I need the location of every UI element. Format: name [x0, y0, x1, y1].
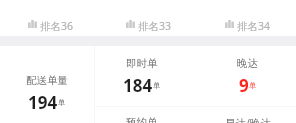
staticText: 单 [249, 81, 257, 90]
button[interactable]: 晚达 [199, 46, 296, 106]
button[interactable]: 排名34 [197, 0, 296, 36]
staticText: 单 [58, 98, 66, 107]
staticText: 排名34 [237, 19, 271, 33]
staticText: 早达/晚达 [225, 116, 271, 123]
staticText: 194 [28, 91, 58, 114]
staticText: 排名36 [40, 19, 74, 33]
button[interactable]: 预约单 [95, 107, 188, 123]
staticText: 184 [123, 74, 153, 97]
button[interactable]: 即时单 [95, 46, 188, 106]
button[interactable]: 排名33 [98, 0, 197, 36]
staticText: 9 [239, 74, 249, 97]
staticText: 即时单 [126, 57, 158, 70]
staticText: 排名33 [138, 19, 172, 33]
button[interactable]: 早达/晚达 [199, 107, 296, 123]
staticText: 配送单量 [26, 74, 68, 87]
staticText: 晚达 [237, 57, 258, 70]
button[interactable]: 排名36 [0, 0, 98, 36]
staticText: 预约单 [126, 116, 158, 123]
staticText: 单 [153, 81, 161, 90]
button[interactable]: 配送单量 [0, 46, 94, 123]
